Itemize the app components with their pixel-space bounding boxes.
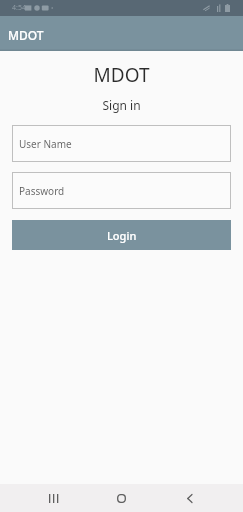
staticText: 4:54 <box>12 3 26 13</box>
staticText: Password <box>19 184 65 198</box>
staticText: MDOT <box>8 27 44 43</box>
staticText: User Name <box>19 137 72 151</box>
button[interactable]: Login <box>12 220 231 250</box>
staticText: MDOT <box>0 62 243 88</box>
staticText: Sign in <box>0 97 243 113</box>
button[interactable]: User Name <box>12 125 231 162</box>
button[interactable]: Home <box>104 484 138 512</box>
button[interactable]: Recents <box>36 484 70 512</box>
button[interactable]: Back <box>172 484 206 512</box>
button[interactable]: Password <box>12 172 231 209</box>
staticText: Login <box>107 228 137 243</box>
